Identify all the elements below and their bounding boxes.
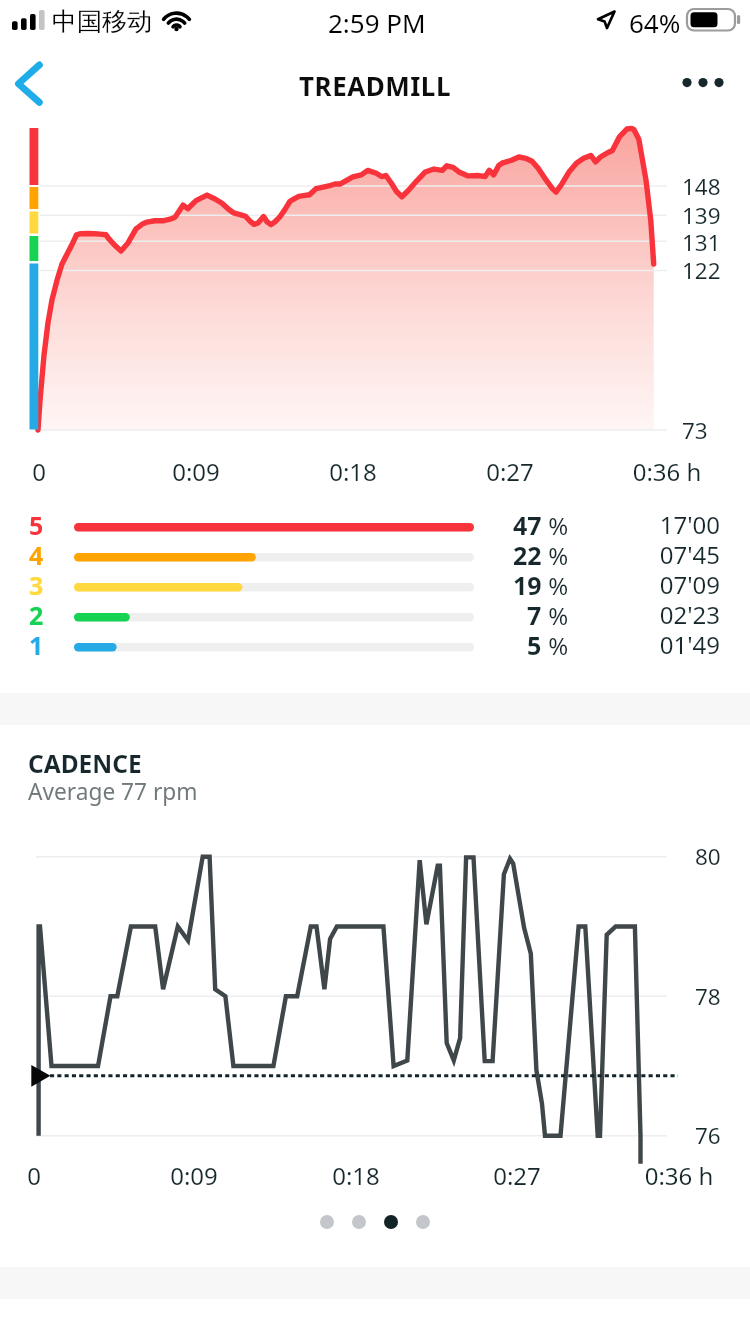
button[interactable]: Page indicator (352, 1215, 366, 1229)
staticText: 07'09 (580, 568, 720, 601)
staticText: 4 (29, 538, 44, 572)
staticText: 7 (527, 598, 542, 632)
staticText: 0:18 (276, 1159, 436, 1192)
staticText: 中国移动 (52, 6, 152, 37)
staticText: 148 (682, 171, 721, 202)
staticText: 76 (695, 1120, 721, 1151)
staticText: % (542, 539, 569, 572)
button[interactable]: 1 (0, 627, 750, 667)
staticText: 0:18 (273, 455, 433, 488)
staticText: 0 (0, 1159, 114, 1192)
staticText: 5 (29, 508, 44, 542)
staticText: 07'45 (580, 538, 720, 571)
staticText: 17'00 (580, 508, 720, 541)
staticText: 22 (513, 538, 542, 572)
staticText: 3 (29, 568, 44, 602)
button[interactable]: More options (672, 49, 734, 109)
staticText: % (542, 569, 569, 602)
staticText: 2 (29, 598, 44, 632)
staticText: Average 77 rpm (28, 776, 198, 807)
staticText: % (542, 509, 569, 542)
staticText: 131 (682, 227, 721, 258)
staticText: 19 (513, 568, 542, 602)
staticText: % (542, 629, 569, 662)
staticText: 0:36 h (599, 1159, 750, 1192)
button[interactable]: 3 (0, 567, 750, 607)
staticText: 0:27 (430, 455, 590, 488)
button[interactable]: 2 (0, 597, 750, 637)
staticText: 122 (682, 255, 721, 286)
button[interactable]: 4 (0, 537, 750, 577)
button[interactable]: Page indicator (416, 1215, 430, 1229)
staticText: 80 (695, 841, 721, 872)
staticText: 0:36 h (587, 455, 747, 488)
staticText: 73 (682, 415, 708, 446)
button[interactable]: 5 (0, 507, 750, 547)
staticText: 01'49 (580, 628, 720, 661)
staticText: 1 (29, 628, 44, 662)
staticText: CADENCE (28, 747, 142, 780)
staticText: 2:59 PM (328, 5, 426, 40)
staticText: 0:09 (114, 1159, 274, 1192)
staticText: 139 (682, 200, 721, 231)
staticText: TREADMILL (0, 68, 750, 103)
button[interactable]: Back (0, 44, 62, 108)
staticText: 64% (629, 5, 681, 40)
button[interactable]: Page indicator (384, 1215, 398, 1229)
staticText: 0:27 (437, 1159, 597, 1192)
staticText: 0 (0, 455, 119, 488)
staticText: 47 (513, 508, 542, 542)
button[interactable]: Page indicator (320, 1215, 334, 1229)
staticText: 5 (527, 628, 542, 662)
staticText: 0:09 (116, 455, 276, 488)
staticText: % (542, 599, 569, 632)
staticText: 02'23 (580, 598, 720, 631)
staticText: 78 (695, 981, 721, 1012)
